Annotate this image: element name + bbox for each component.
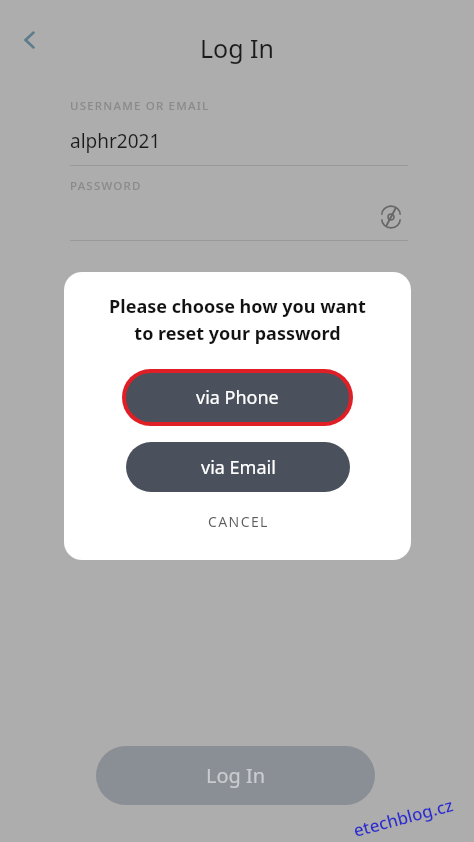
staticText: Please choose how you want to reset your…	[109, 294, 366, 345]
button[interactable]: Show password	[374, 200, 408, 234]
staticText: CANCEL	[208, 512, 269, 531]
staticText: etechblog.cz	[351, 793, 456, 842]
button[interactable]: via Email	[126, 442, 350, 492]
button[interactable]: Log In	[96, 746, 375, 805]
staticText: via Phone	[196, 385, 279, 410]
staticText: PASSWORD	[70, 178, 142, 194]
staticText: via Email	[201, 455, 276, 480]
staticText: alphr2021	[70, 128, 161, 154]
button[interactable]: via Phone	[126, 373, 349, 422]
staticText: Log In	[200, 31, 275, 65]
staticText: USERNAME OR EMAIL	[70, 98, 210, 114]
button[interactable]: CANCEL	[158, 504, 318, 538]
staticText: Log In	[206, 762, 266, 789]
button[interactable]: Back	[8, 18, 52, 62]
